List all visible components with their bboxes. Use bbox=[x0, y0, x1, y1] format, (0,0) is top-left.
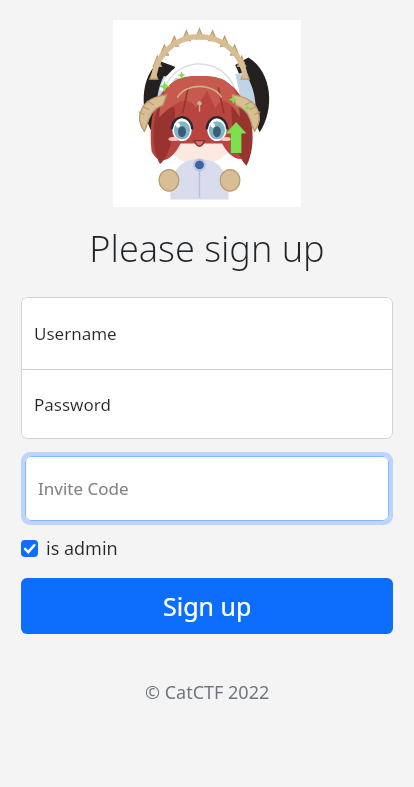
staticText: Sign up bbox=[163, 589, 252, 623]
button[interactable]: Invite Code bbox=[25, 456, 389, 521]
button[interactable]: Password bbox=[21, 369, 393, 439]
staticText: Username bbox=[34, 322, 117, 345]
button[interactable]: Sign up bbox=[21, 578, 393, 634]
button[interactable]: is admin bbox=[21, 536, 118, 561]
staticText: © CatCTF 2022 bbox=[145, 680, 270, 705]
staticText: is admin bbox=[46, 536, 118, 561]
staticText: Invite Code bbox=[38, 477, 129, 500]
staticText: Password bbox=[34, 393, 111, 416]
staticText: Please sign up bbox=[89, 224, 325, 273]
button[interactable]: Username bbox=[21, 297, 393, 370]
